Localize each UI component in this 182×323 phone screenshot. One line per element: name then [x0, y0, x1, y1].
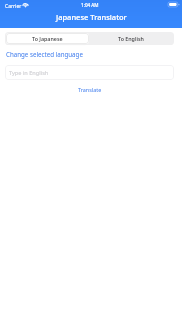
staticText: Carrier	[5, 3, 22, 10]
staticText: To English	[118, 35, 144, 42]
other: Wi-Fi signal	[22, 2, 29, 7]
button[interactable]: To Japanese	[6, 33, 89, 44]
staticText: Type in English	[9, 69, 49, 77]
staticText: Change selected language	[6, 50, 83, 58]
button[interactable]: Change selected language	[6, 50, 83, 58]
other: Battery full	[168, 2, 180, 7]
staticText: Japanese Translator	[56, 12, 127, 22]
staticText: To Japanese	[32, 35, 63, 42]
button[interactable]: To English	[89, 33, 173, 44]
button[interactable]: Translate	[72, 84, 108, 95]
staticText: 1:04 AM	[81, 2, 99, 8]
button[interactable]: Type in English	[5, 65, 174, 80]
staticText: Translate	[78, 86, 102, 93]
